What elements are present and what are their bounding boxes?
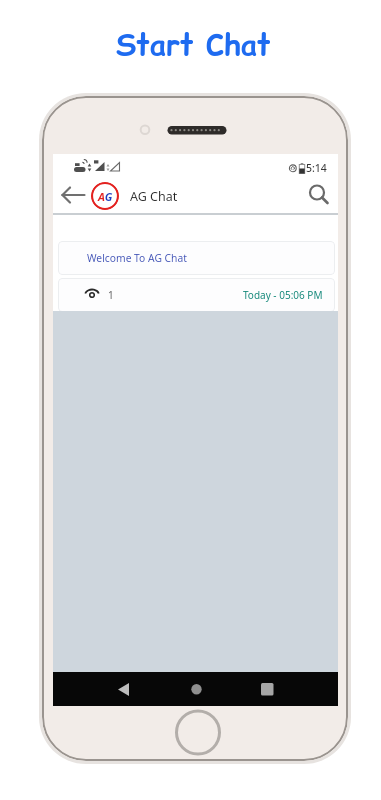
button[interactable] (182, 675, 211, 703)
button[interactable] (55, 179, 91, 211)
button[interactable] (253, 675, 282, 703)
staticText: AG Chat (130, 188, 178, 205)
button[interactable] (303, 179, 335, 211)
staticText: 1 (108, 288, 114, 302)
staticText: Start Chat (116, 24, 271, 64)
staticText: AG (98, 189, 113, 204)
staticText: Today - 05:06 PM (243, 288, 323, 302)
button[interactable]: AG (91, 182, 119, 210)
button[interactable]: Welcome To AG Chat (58, 241, 335, 275)
button[interactable]: 1 (58, 278, 335, 312)
staticText: 5:14 (306, 161, 327, 175)
button[interactable] (110, 675, 139, 703)
staticText: Welcome To AG Chat (87, 251, 187, 265)
button[interactable] (176, 711, 219, 754)
